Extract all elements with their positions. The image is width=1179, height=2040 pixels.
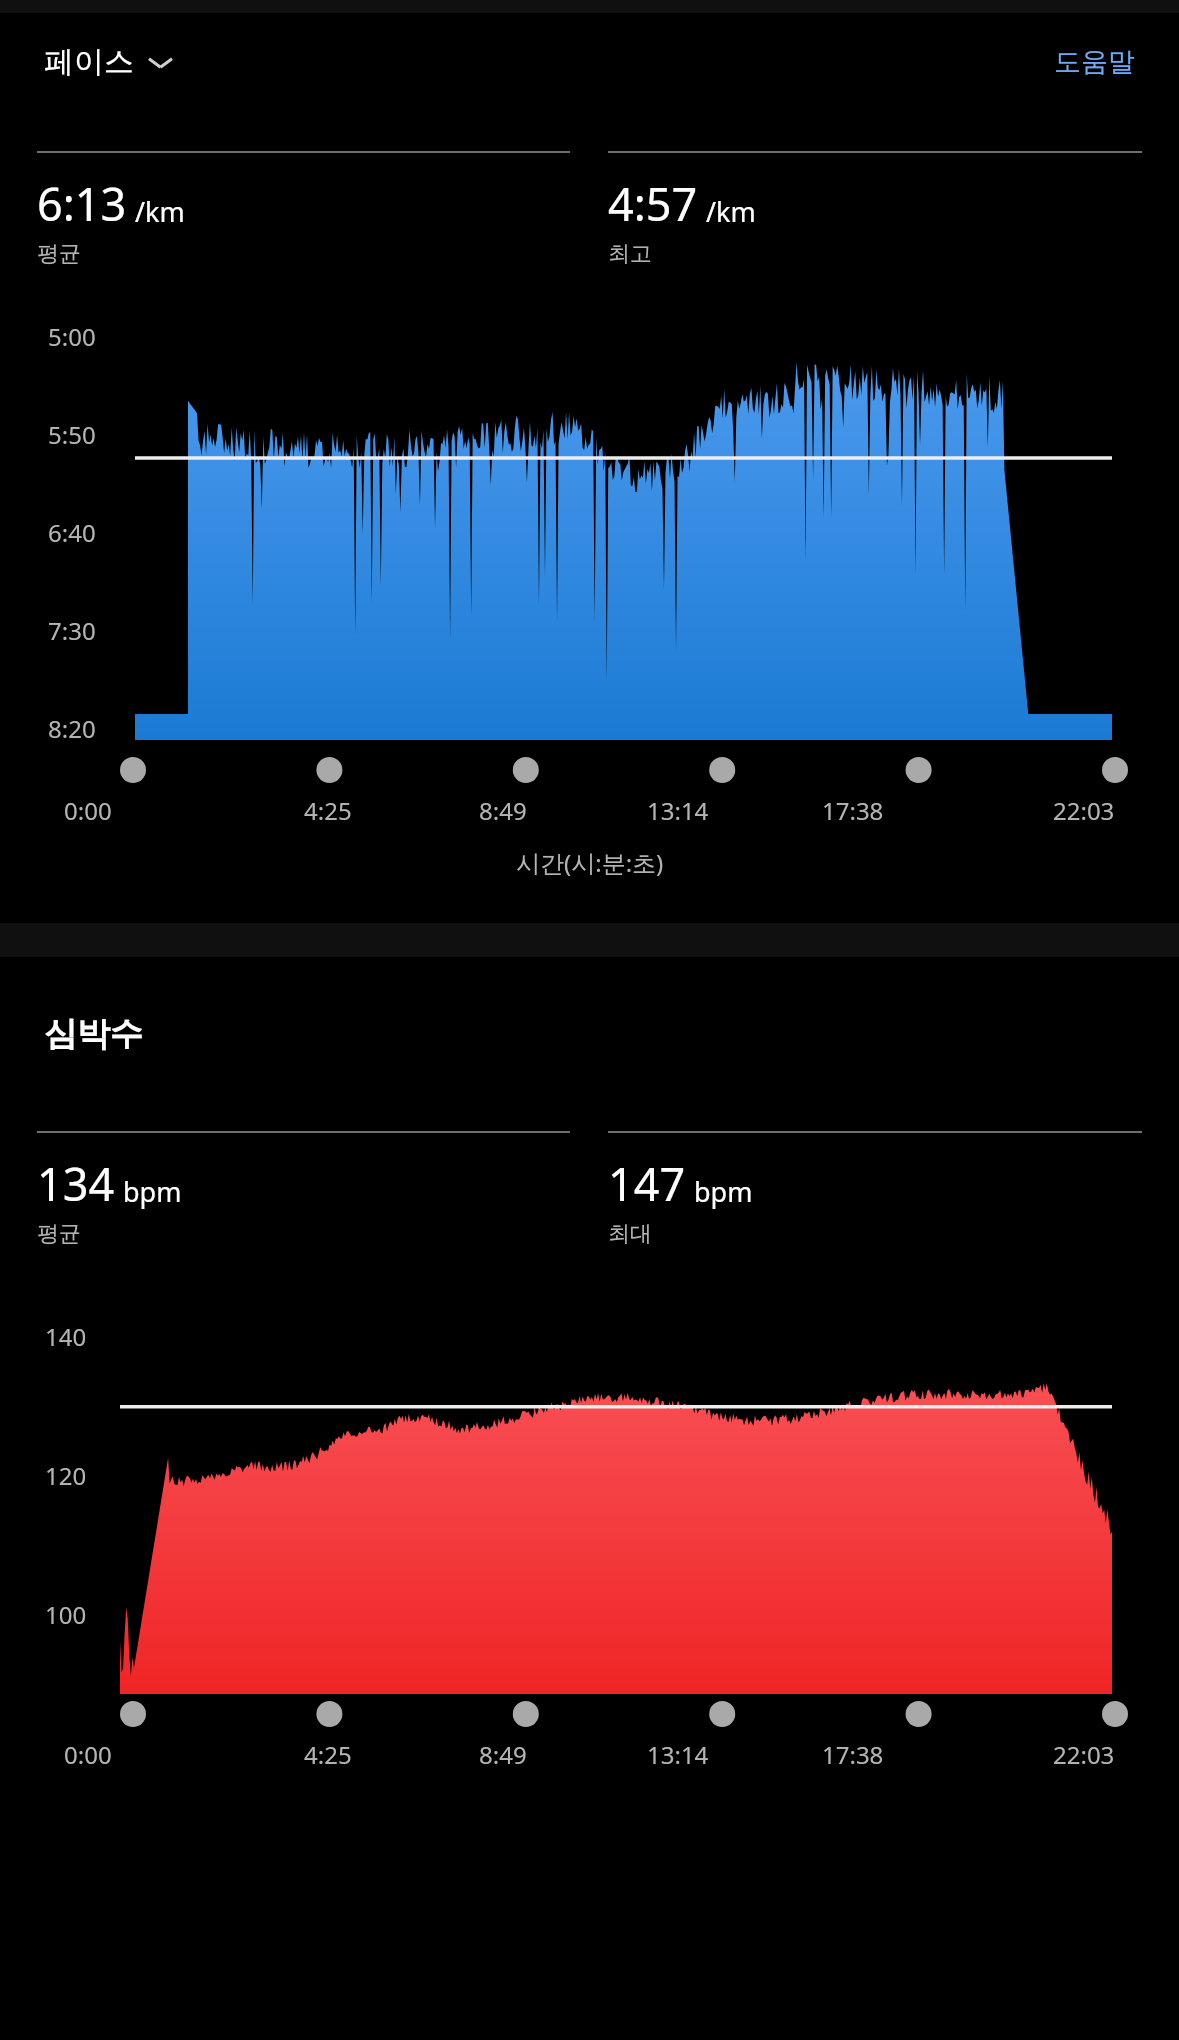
staticText: 6:40 [48, 516, 96, 549]
staticText: 4:25 [304, 1738, 352, 1771]
staticText: 최고 [608, 240, 652, 268]
button[interactable]: 페이스 [44, 43, 174, 81]
staticText: 평균 [37, 1220, 81, 1248]
button[interactable]: 도움말 [1054, 45, 1135, 79]
staticText: 시간(시:분:초) [516, 846, 664, 879]
staticText: 0:00 [64, 1738, 112, 1771]
staticText: 140 [45, 1320, 87, 1353]
staticText: 13:14 [647, 794, 709, 827]
button[interactable]: 심박수 [44, 1013, 143, 1055]
staticText: 8:49 [479, 1738, 527, 1771]
staticText: 페이스 [44, 43, 134, 81]
staticText: 134 [37, 1153, 115, 1214]
staticText: 6:13 [37, 173, 127, 234]
staticText: 4:25 [304, 794, 352, 827]
staticText: 120 [45, 1459, 87, 1492]
staticText: 100 [45, 1598, 87, 1631]
staticText: 도움말 [1054, 45, 1135, 79]
staticText: bpm [694, 1173, 753, 1210]
staticText: 22:03 [1053, 1738, 1115, 1771]
staticText: 최대 [608, 1220, 652, 1248]
staticText: bpm [123, 1173, 182, 1210]
staticText: 평균 [37, 240, 81, 268]
staticText: /km [706, 193, 756, 230]
staticText: 심박수 [44, 1013, 143, 1055]
staticText: 8:49 [479, 794, 527, 827]
staticText: 22:03 [1053, 794, 1115, 827]
staticText: 5:00 [48, 320, 96, 353]
staticText: 17:38 [822, 1738, 884, 1771]
staticText: 147 [608, 1153, 686, 1214]
staticText: 7:30 [48, 614, 96, 647]
staticText: 4:57 [608, 173, 698, 234]
staticText: 17:38 [822, 794, 884, 827]
staticText: /km [135, 193, 185, 230]
staticText: 13:14 [647, 1738, 709, 1771]
staticText: 5:50 [48, 418, 96, 451]
other: Change metric [147, 54, 174, 71]
staticText: 0:00 [64, 794, 112, 827]
staticText: 8:20 [48, 712, 96, 745]
